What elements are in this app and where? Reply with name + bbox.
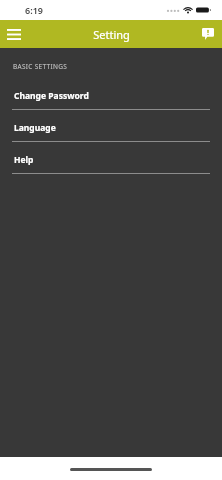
staticText: 6:19 [25,4,43,16]
button[interactable]: Help [0,147,222,173]
button[interactable]: Language [0,115,222,141]
staticText: Language [14,122,56,134]
staticText: BASIC SETTINGS [13,62,68,71]
staticText: Change Password [14,90,89,102]
staticText: Setting [93,27,130,42]
button[interactable]: Change Password [0,83,222,109]
staticText: Help [14,154,34,166]
button[interactable]: Feedback [194,20,222,48]
button[interactable]: Menu [0,20,28,48]
